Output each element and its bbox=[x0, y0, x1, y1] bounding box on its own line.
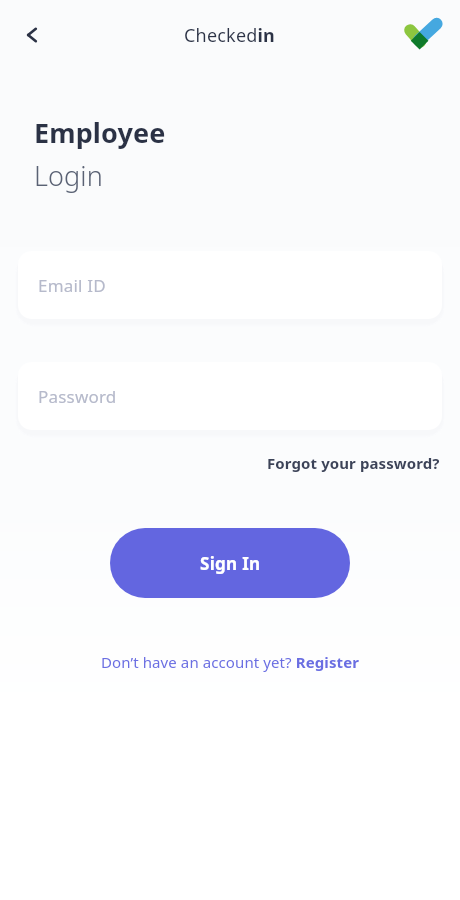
button[interactable]: Email ID bbox=[18, 251, 442, 319]
button[interactable]: Checkedin logo bbox=[400, 12, 446, 58]
staticText: Employee bbox=[34, 114, 166, 151]
button[interactable]: Back bbox=[8, 11, 56, 59]
staticText: Sign In bbox=[200, 552, 261, 575]
button[interactable]: Password bbox=[18, 362, 442, 430]
staticText: Email ID bbox=[38, 274, 106, 297]
staticText: Checkedin bbox=[184, 23, 276, 48]
staticText: Login bbox=[34, 157, 103, 194]
staticText: Don’t have an account yet? Register bbox=[101, 652, 359, 672]
button[interactable]: Forgot your password? bbox=[259, 447, 448, 479]
staticText: Forgot your password? bbox=[267, 453, 440, 473]
button[interactable]: Sign In bbox=[110, 528, 350, 598]
button[interactable]: Don’t have an account yet? Register bbox=[91, 646, 369, 678]
staticText: Password bbox=[38, 385, 117, 408]
